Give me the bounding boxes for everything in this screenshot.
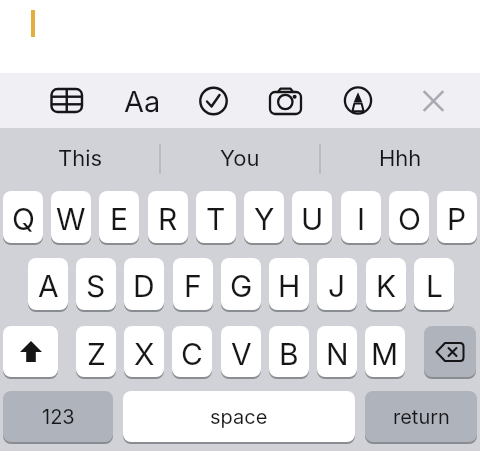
button[interactable]: D [124, 258, 164, 310]
staticText: H [278, 268, 301, 304]
button[interactable]: Z [76, 326, 116, 377]
staticText: V [231, 336, 252, 372]
staticText: J [328, 268, 346, 304]
button[interactable]: I [341, 191, 381, 243]
button[interactable]: T [196, 191, 236, 243]
button[interactable]: O [389, 191, 429, 243]
button[interactable]: A [28, 258, 68, 310]
staticText: I [357, 201, 366, 237]
button[interactable]: You [170, 128, 310, 188]
button[interactable]: B [269, 326, 309, 377]
staticText: This [58, 145, 103, 172]
staticText: Hhh [379, 145, 422, 172]
button[interactable]: 123 [3, 391, 113, 442]
button[interactable]: X [124, 326, 164, 377]
button[interactable]: Q [3, 191, 43, 243]
button[interactable]: Aa [118, 82, 166, 120]
staticText: S [86, 268, 106, 304]
staticText: Q [12, 201, 35, 237]
staticText: M [371, 336, 399, 372]
button[interactable]: S [76, 258, 116, 310]
staticText: X [134, 336, 155, 372]
staticText: B [279, 336, 299, 372]
button[interactable]: L [414, 258, 454, 310]
button[interactable]: Y [244, 191, 284, 243]
staticText: G [230, 268, 253, 304]
button[interactable]: U [292, 191, 332, 243]
staticText: R [158, 201, 178, 237]
staticText: C [181, 336, 203, 372]
button[interactable] [424, 326, 476, 377]
staticText: F [184, 268, 202, 304]
button[interactable]: R [148, 191, 188, 243]
button[interactable]: return [365, 391, 477, 442]
button[interactable]: M [365, 326, 405, 377]
button[interactable] [268, 87, 304, 116]
button[interactable]: P [437, 191, 477, 243]
staticText: Aa [124, 84, 161, 119]
staticText: 123 [42, 405, 75, 429]
staticText: P [447, 201, 467, 237]
staticText: L [426, 268, 443, 304]
button[interactable]: C [172, 326, 212, 377]
button[interactable]: This [10, 128, 150, 188]
button[interactable] [3, 326, 58, 377]
staticText: Y [254, 201, 275, 237]
button[interactable]: V [221, 326, 261, 377]
button[interactable] [50, 87, 84, 114]
staticText: D [133, 268, 155, 304]
button[interactable]: E [99, 191, 139, 243]
button[interactable] [422, 89, 445, 112]
button[interactable]: F [173, 258, 213, 310]
staticText: E [110, 201, 129, 237]
button[interactable]: H [269, 258, 309, 310]
staticText: space [210, 405, 268, 429]
button[interactable]: space [123, 391, 355, 442]
staticText: You [220, 145, 260, 172]
button[interactable] [344, 87, 372, 115]
staticText: return [393, 405, 450, 429]
staticText: Z [87, 336, 106, 372]
button[interactable]: W [51, 191, 91, 243]
button[interactable]: Hhh [330, 128, 470, 188]
button[interactable] [199, 86, 229, 116]
staticText: U [301, 201, 324, 237]
button[interactable]: G [221, 258, 261, 310]
button[interactable]: J [317, 258, 357, 310]
staticText: T [206, 201, 226, 237]
button[interactable]: N [317, 326, 357, 377]
staticText: K [376, 268, 397, 304]
staticText: A [38, 268, 59, 304]
staticText: O [398, 201, 421, 237]
staticText: W [56, 201, 86, 237]
button[interactable]: K [366, 258, 406, 310]
staticText: N [326, 336, 349, 372]
